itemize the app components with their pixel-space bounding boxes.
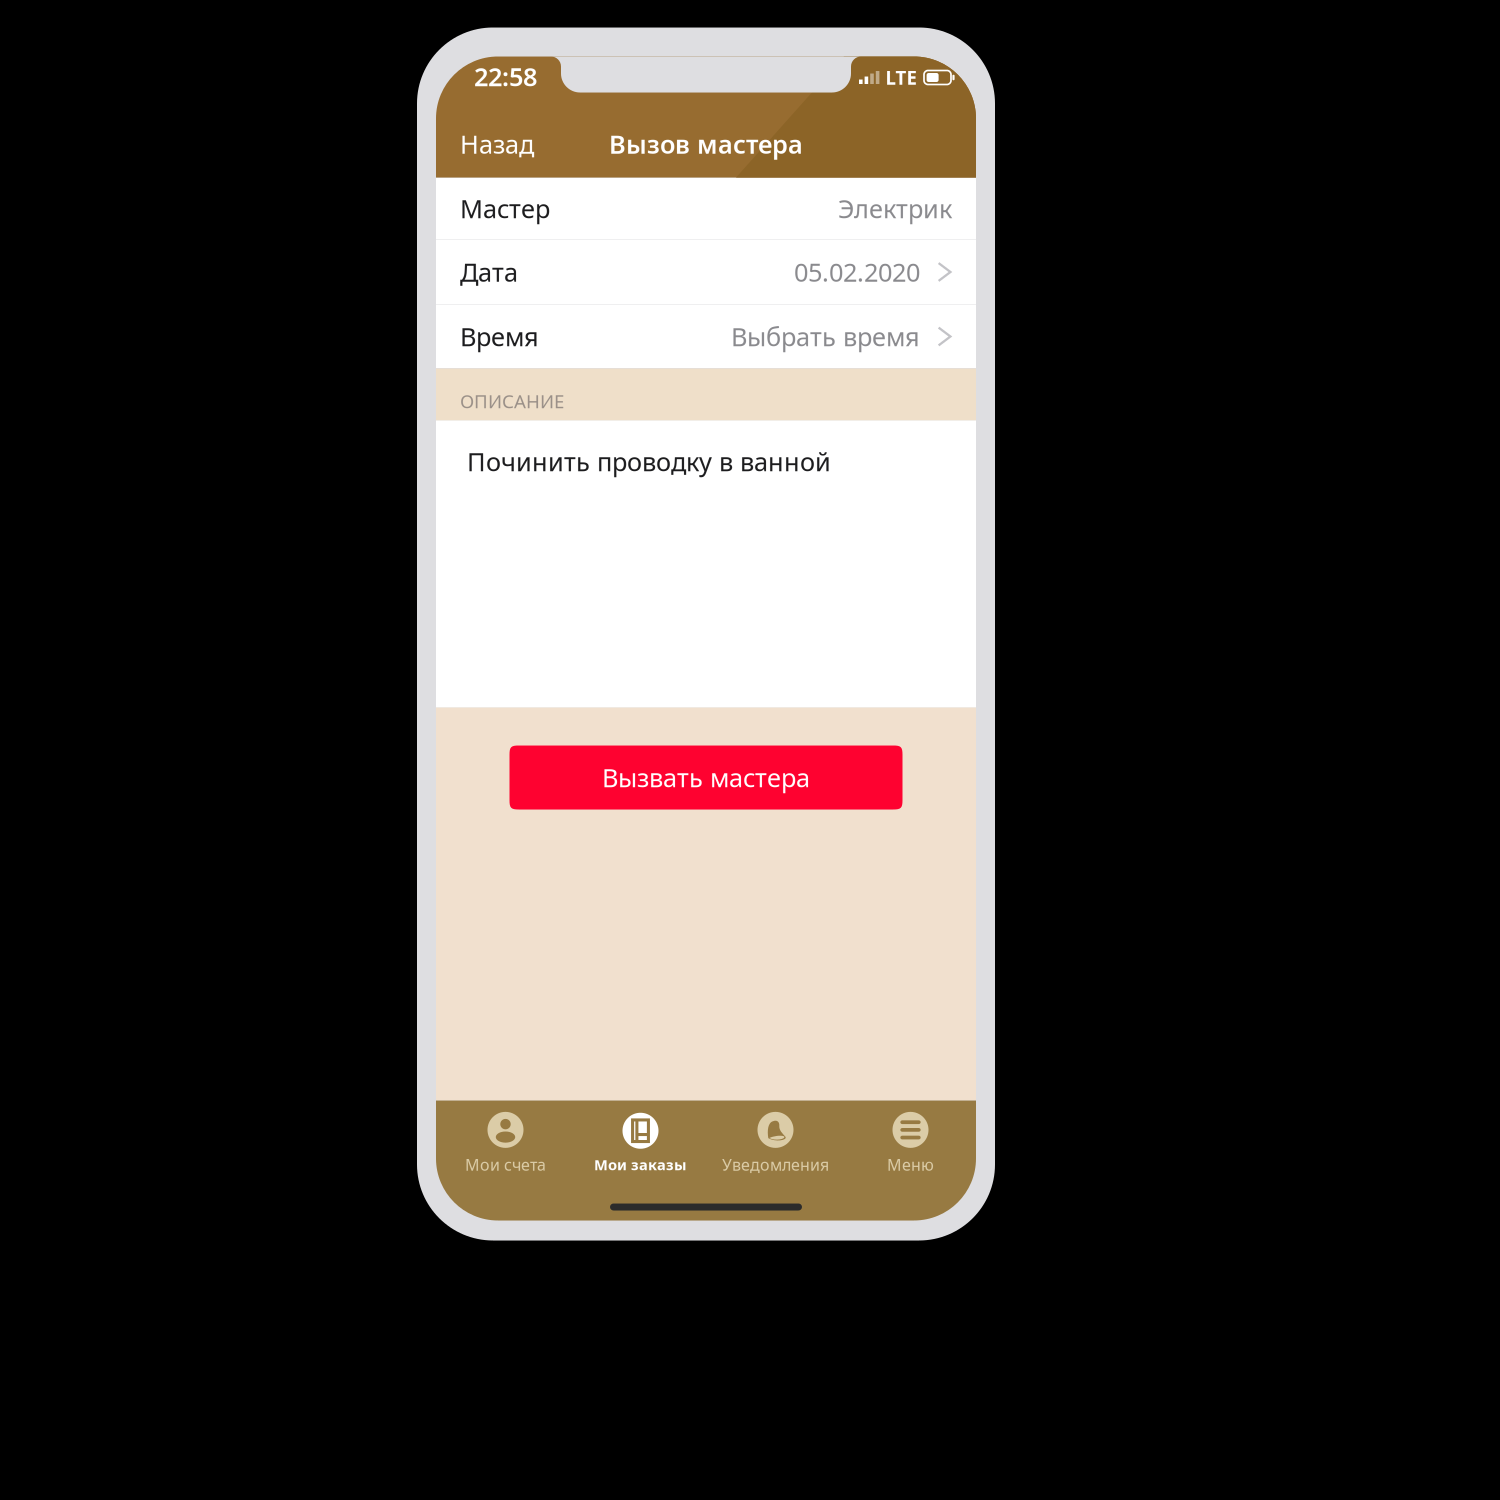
staticText: Мастер [460,192,550,225]
staticText: Дата [460,255,518,289]
button[interactable]: Мои счета [438,1108,573,1178]
staticText: Починить проводку в ванной [467,444,831,478]
staticText: Электрик [838,192,952,225]
staticText: 05.02.2020 [794,255,920,289]
staticText: Меню [887,1154,934,1175]
staticText: LTE [885,65,916,90]
button[interactable]: Уведомления [708,1108,843,1178]
button[interactable]: Вызвать мастера [509,745,902,809]
staticText: 22:58 [474,60,537,93]
staticText: Вызов мастера [609,127,803,161]
button[interactable]: Мои заказы [573,1108,708,1178]
button[interactable]: Мастер [436,178,976,239]
staticText: Вызвать мастера [602,761,810,794]
staticText: Мои заказы [594,1155,687,1174]
button[interactable]: Время [436,305,976,368]
staticText: Уведомления [722,1154,829,1175]
staticText: Мои счета [465,1154,546,1175]
staticText: ОПИСАНИЕ [460,389,564,413]
button[interactable]: Меню [843,1108,978,1178]
staticText: Назад [460,127,534,161]
staticText: Время [460,320,539,353]
staticText: Выбрать время [731,320,920,353]
button[interactable]: Дата [436,240,976,304]
button[interactable]: Назад [436,105,558,182]
